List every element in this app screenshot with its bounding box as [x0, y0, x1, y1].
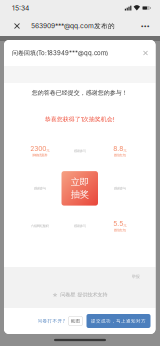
staticText: 5.5: [113, 219, 123, 228]
staticText: 感谢参与: [114, 186, 126, 190]
button[interactable]: Close: [9, 18, 25, 34]
button[interactable]: 截图: [68, 316, 82, 325]
button[interactable]: 举报: [128, 271, 142, 282]
staticText: 恭喜您获得了1次抽奖机会!: [45, 116, 115, 123]
staticText: 六福网红酸奶: [31, 224, 49, 228]
staticText: 8.8: [113, 144, 123, 153]
staticText: 元: [123, 148, 126, 153]
staticText: 问卷打不开?: [37, 318, 64, 324]
staticText: 立即: [71, 176, 89, 188]
staticText: 感谢参与: [74, 224, 86, 228]
staticText: 购物优惠券: [32, 153, 47, 157]
staticText: 您的答卷已经提交，感谢您的参与！: [32, 89, 128, 97]
button[interactable]: More options: [138, 18, 152, 34]
button[interactable]: Dismiss: [139, 47, 151, 59]
button[interactable]: 提交成功，马上通知对方: [86, 314, 150, 328]
staticText: 感谢参与: [74, 149, 86, 153]
staticText: 元: [46, 148, 49, 153]
staticText: •••: [140, 22, 149, 30]
staticText: ☆ 问卷星 提供技术支持: [52, 291, 107, 298]
staticText: 提交成功，马上通知对方: [91, 318, 146, 324]
staticText: 感谢参与: [34, 186, 46, 190]
staticText: 微信红包: [114, 228, 126, 232]
staticText: 抽奖: [71, 189, 89, 200]
staticText: 截图: [70, 318, 80, 324]
staticText: 15:34: [12, 4, 29, 12]
staticText: 微信红包: [114, 153, 126, 157]
staticText: 563909***@qq.com发布的: [31, 22, 115, 30]
button[interactable]: 问卷打不开?: [37, 318, 64, 324]
staticText: 2300: [30, 144, 46, 153]
staticText: 举报: [131, 274, 139, 279]
button[interactable]: 立即: [61, 171, 98, 206]
staticText: 元: [123, 223, 126, 228]
staticText: 问卷回填(To:183949***@qq.com): [12, 49, 108, 57]
